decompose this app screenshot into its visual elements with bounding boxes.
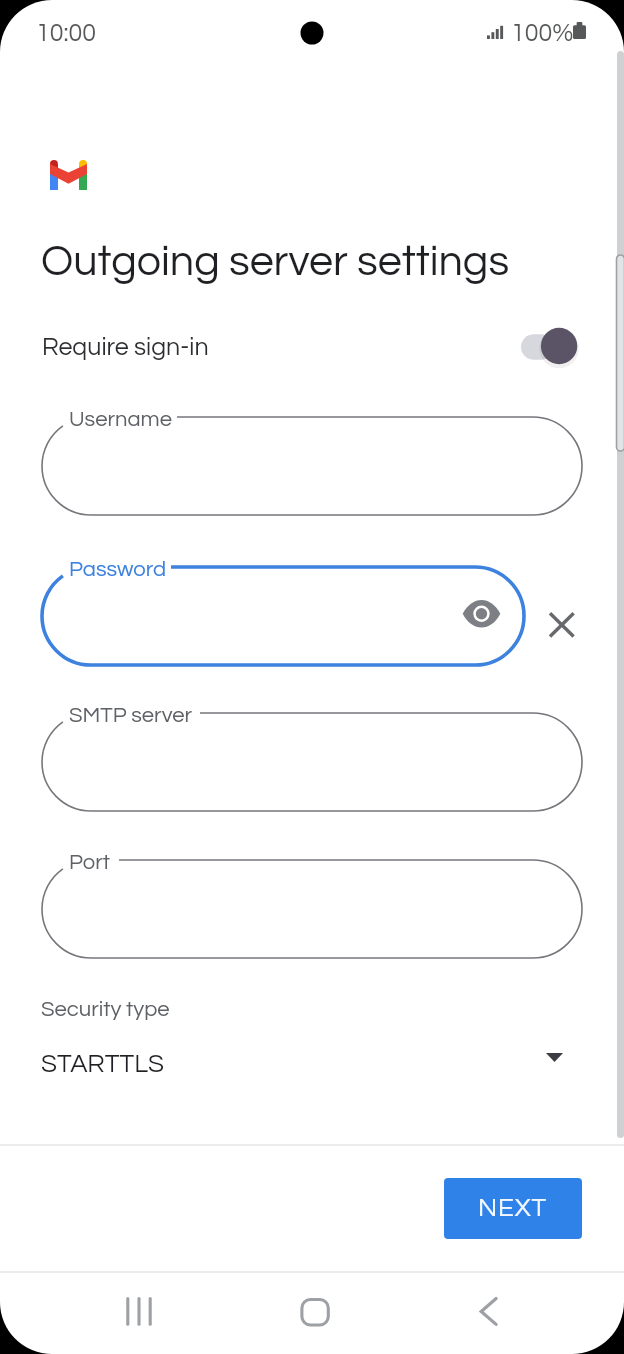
staticText: Outgoing server settings [41,240,510,284]
button[interactable]: Username [42,417,582,515]
button[interactable]: Show password [458,590,505,637]
button[interactable]: SMTP server [42,713,582,811]
staticText: Security type [41,998,170,1021]
button[interactable]: Clear password [538,601,586,649]
button[interactable]: STARTTLS [0,1038,624,1092]
staticText: NEXT [478,1195,548,1222]
staticText: Require sign-in [42,334,209,360]
staticText: SMTP server [69,704,193,727]
button[interactable]: Port [42,860,582,958]
staticText: 100% [511,20,574,46]
staticText: Password [69,558,167,581]
button[interactable]: NEXT [444,1178,582,1239]
button[interactable] [521,325,584,369]
staticText: STARTTLS [41,1051,164,1078]
button[interactable]: Password [42,567,524,665]
button[interactable]: Require sign-in [0,318,624,376]
button[interactable]: Back [458,1285,520,1339]
button[interactable]: Home [283,1285,345,1339]
staticText: 10:00 [36,20,97,46]
staticText: Username [69,408,172,431]
button[interactable]: Recent apps [107,1285,169,1339]
staticText: Port [69,851,110,874]
